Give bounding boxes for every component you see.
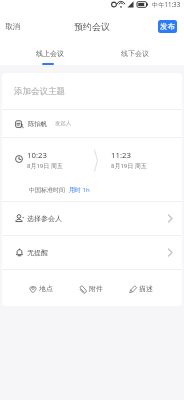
staticText: 线上会议 [36,49,64,58]
button[interactable]: 线上会议 [28,39,71,65]
staticText: 附件 [89,284,103,293]
staticText: 选择参会人 [27,214,62,223]
staticText: 线下会议 [121,49,149,58]
staticText: 添加会议主题 [14,86,65,97]
staticText: 8月19日 周五 [27,162,63,170]
staticText: 发起人 [55,120,72,127]
staticText: 描述 [139,284,153,293]
staticText: 无提醒 [27,248,48,257]
staticText: 预约会议 [74,21,110,32]
staticText: 陈怡帆 [28,120,48,128]
button[interactable]: 10:23 [2,138,182,201]
button[interactable]: 线下会议 [113,39,156,65]
staticText: 地点 [39,284,53,293]
staticText: 11:23 [111,150,131,161]
button[interactable]: 选择参会人 [2,202,182,235]
staticText: 发布 [160,22,175,31]
staticText: 中国标准时间 [29,186,65,194]
button[interactable]: 描述 [126,284,155,293]
button[interactable]: 无提醒 [2,236,182,269]
button[interactable]: 陈怡帆 [2,110,182,137]
button[interactable]: 附件 [76,284,105,293]
button[interactable]: 地点 [26,284,55,293]
staticText: 8月19日 周五 [111,162,147,170]
staticText: 用时 1h [69,186,90,194]
button[interactable]: 取消 [0,17,25,36]
staticText: 中午11:33 [152,0,181,8]
staticText: 10:23 [27,150,47,161]
button[interactable]: 添加会议主题 [2,73,182,109]
staticText: 取消 [5,22,20,31]
button[interactable]: 发布 [158,20,177,33]
